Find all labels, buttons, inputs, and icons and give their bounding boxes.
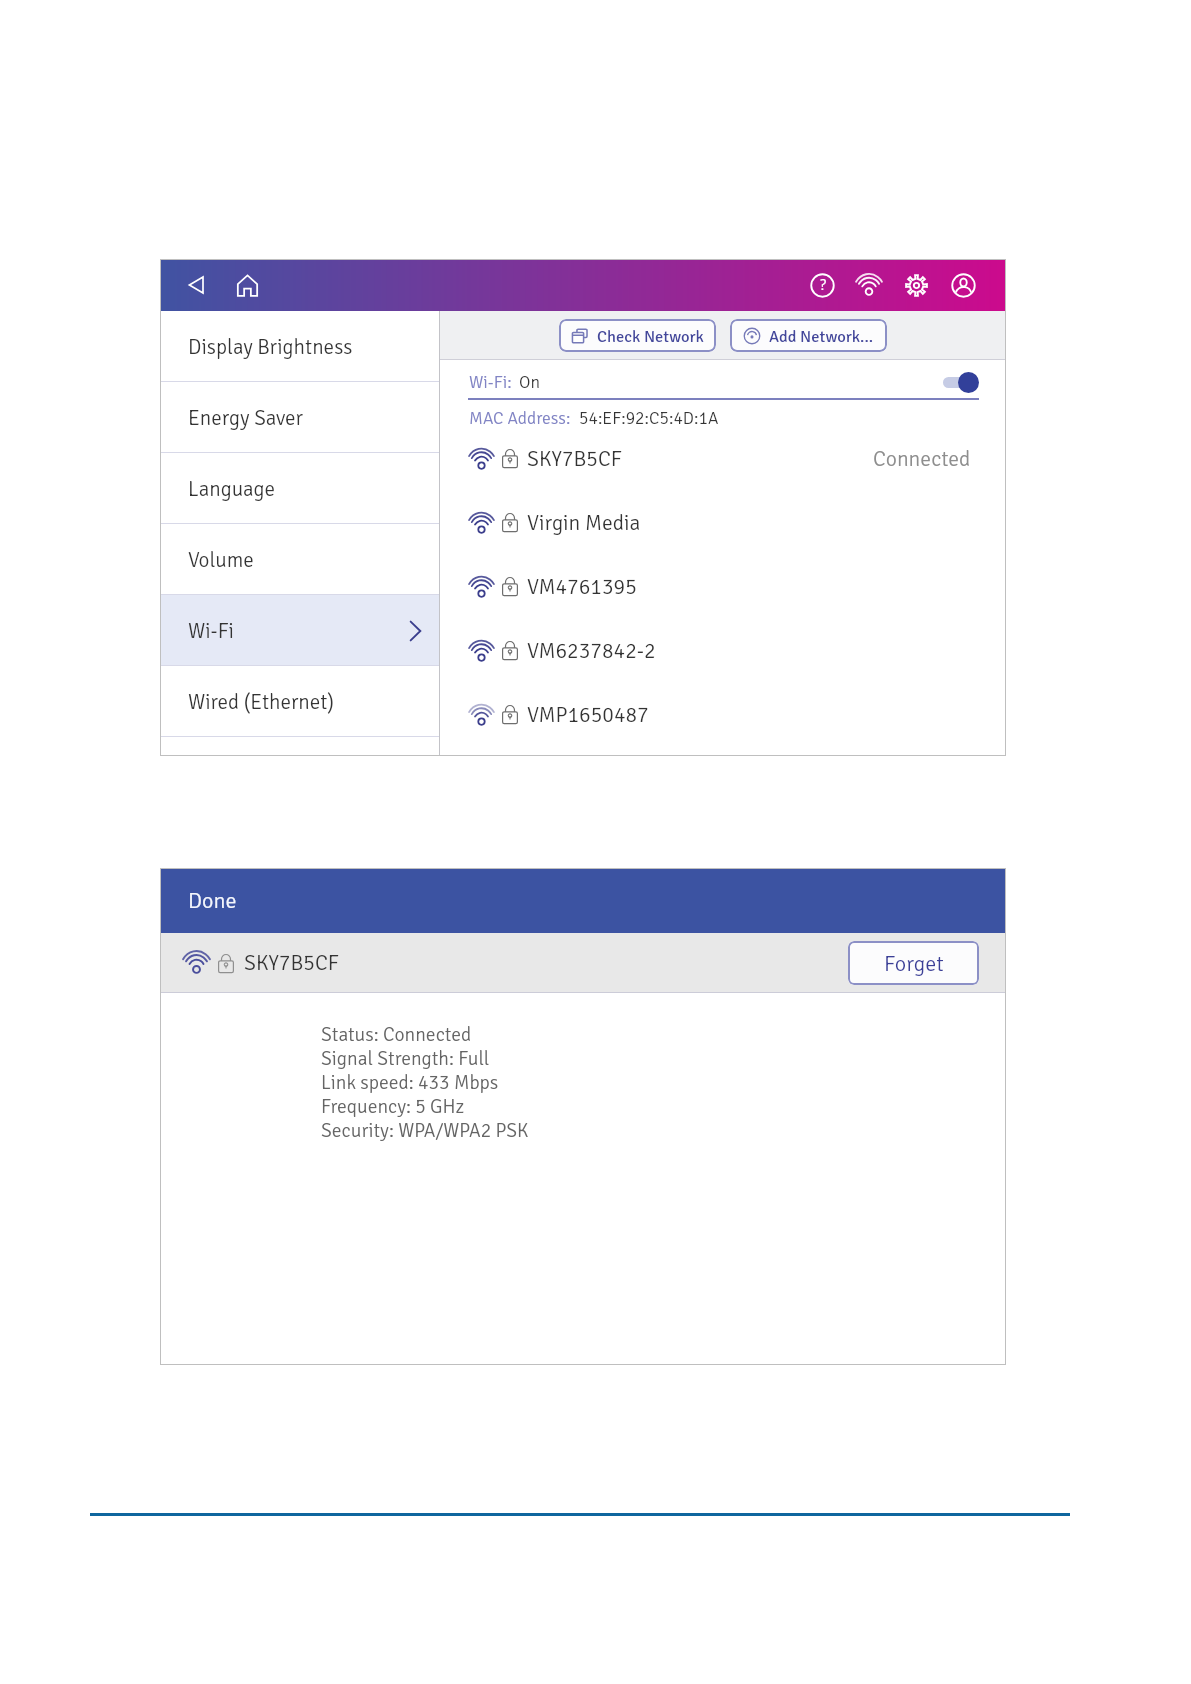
staticText: Signal Strength: Full xyxy=(321,1047,490,1071)
button[interactable]: Wi-Fi toggle xyxy=(943,372,979,393)
staticText: Wired (Ethernet) xyxy=(188,689,334,715)
staticText: Link speed: 433 Mbps xyxy=(321,1071,499,1095)
staticText: Security: WPA/WPA2 PSK xyxy=(321,1119,529,1143)
staticText: VMP1650487 xyxy=(527,702,649,728)
staticText: On xyxy=(519,372,540,394)
button[interactable]: Language xyxy=(160,453,439,524)
staticText: SKY7B5CF xyxy=(527,446,622,472)
staticText: Volume xyxy=(188,547,254,573)
staticText: Done xyxy=(188,887,237,914)
staticText: VM4761395 xyxy=(527,574,637,600)
button[interactable]: Home xyxy=(230,268,264,302)
staticText: ? xyxy=(820,276,826,294)
button[interactable]: Wi-Fi xyxy=(160,595,439,666)
staticText: Connected xyxy=(873,446,971,472)
staticText: Energy Saver xyxy=(188,405,303,431)
staticText: VM6237842-2 xyxy=(527,638,656,664)
button[interactable]: Wired (Ethernet) xyxy=(160,666,439,737)
staticText: Wi-Fi xyxy=(188,618,234,644)
staticText: Forget xyxy=(884,950,944,977)
staticText: Frequency: 5 GHz xyxy=(321,1095,465,1119)
button[interactable]: Display Brightness xyxy=(160,311,439,382)
staticText: Language xyxy=(188,476,276,502)
staticText: Check Network xyxy=(597,326,704,346)
button[interactable]: Back xyxy=(180,268,214,302)
staticText: Display Brightness xyxy=(188,334,353,360)
staticText: Virgin Media xyxy=(527,510,641,536)
staticText: Wi-Fi: xyxy=(469,372,512,394)
button[interactable]: Add Network... xyxy=(730,319,887,352)
staticText: Status: Connected xyxy=(321,1023,472,1047)
button[interactable]: Done xyxy=(160,868,1006,933)
button[interactable]: Volume xyxy=(160,524,439,595)
staticText: MAC Address: xyxy=(469,408,571,430)
button[interactable]: Forget xyxy=(848,941,979,985)
staticText: Add Network... xyxy=(769,326,874,346)
button[interactable]: Energy Saver xyxy=(160,382,439,453)
button[interactable]: Wi-Fi status xyxy=(852,268,886,302)
staticText: 54:EF:92:C5:4D:1A xyxy=(579,408,719,430)
button[interactable]: Account xyxy=(946,268,980,302)
button[interactable]: Settings xyxy=(899,268,933,302)
staticText: SKY7B5CF xyxy=(244,950,339,976)
button[interactable]: Help xyxy=(805,268,839,302)
button[interactable]: Check Network xyxy=(559,319,716,352)
